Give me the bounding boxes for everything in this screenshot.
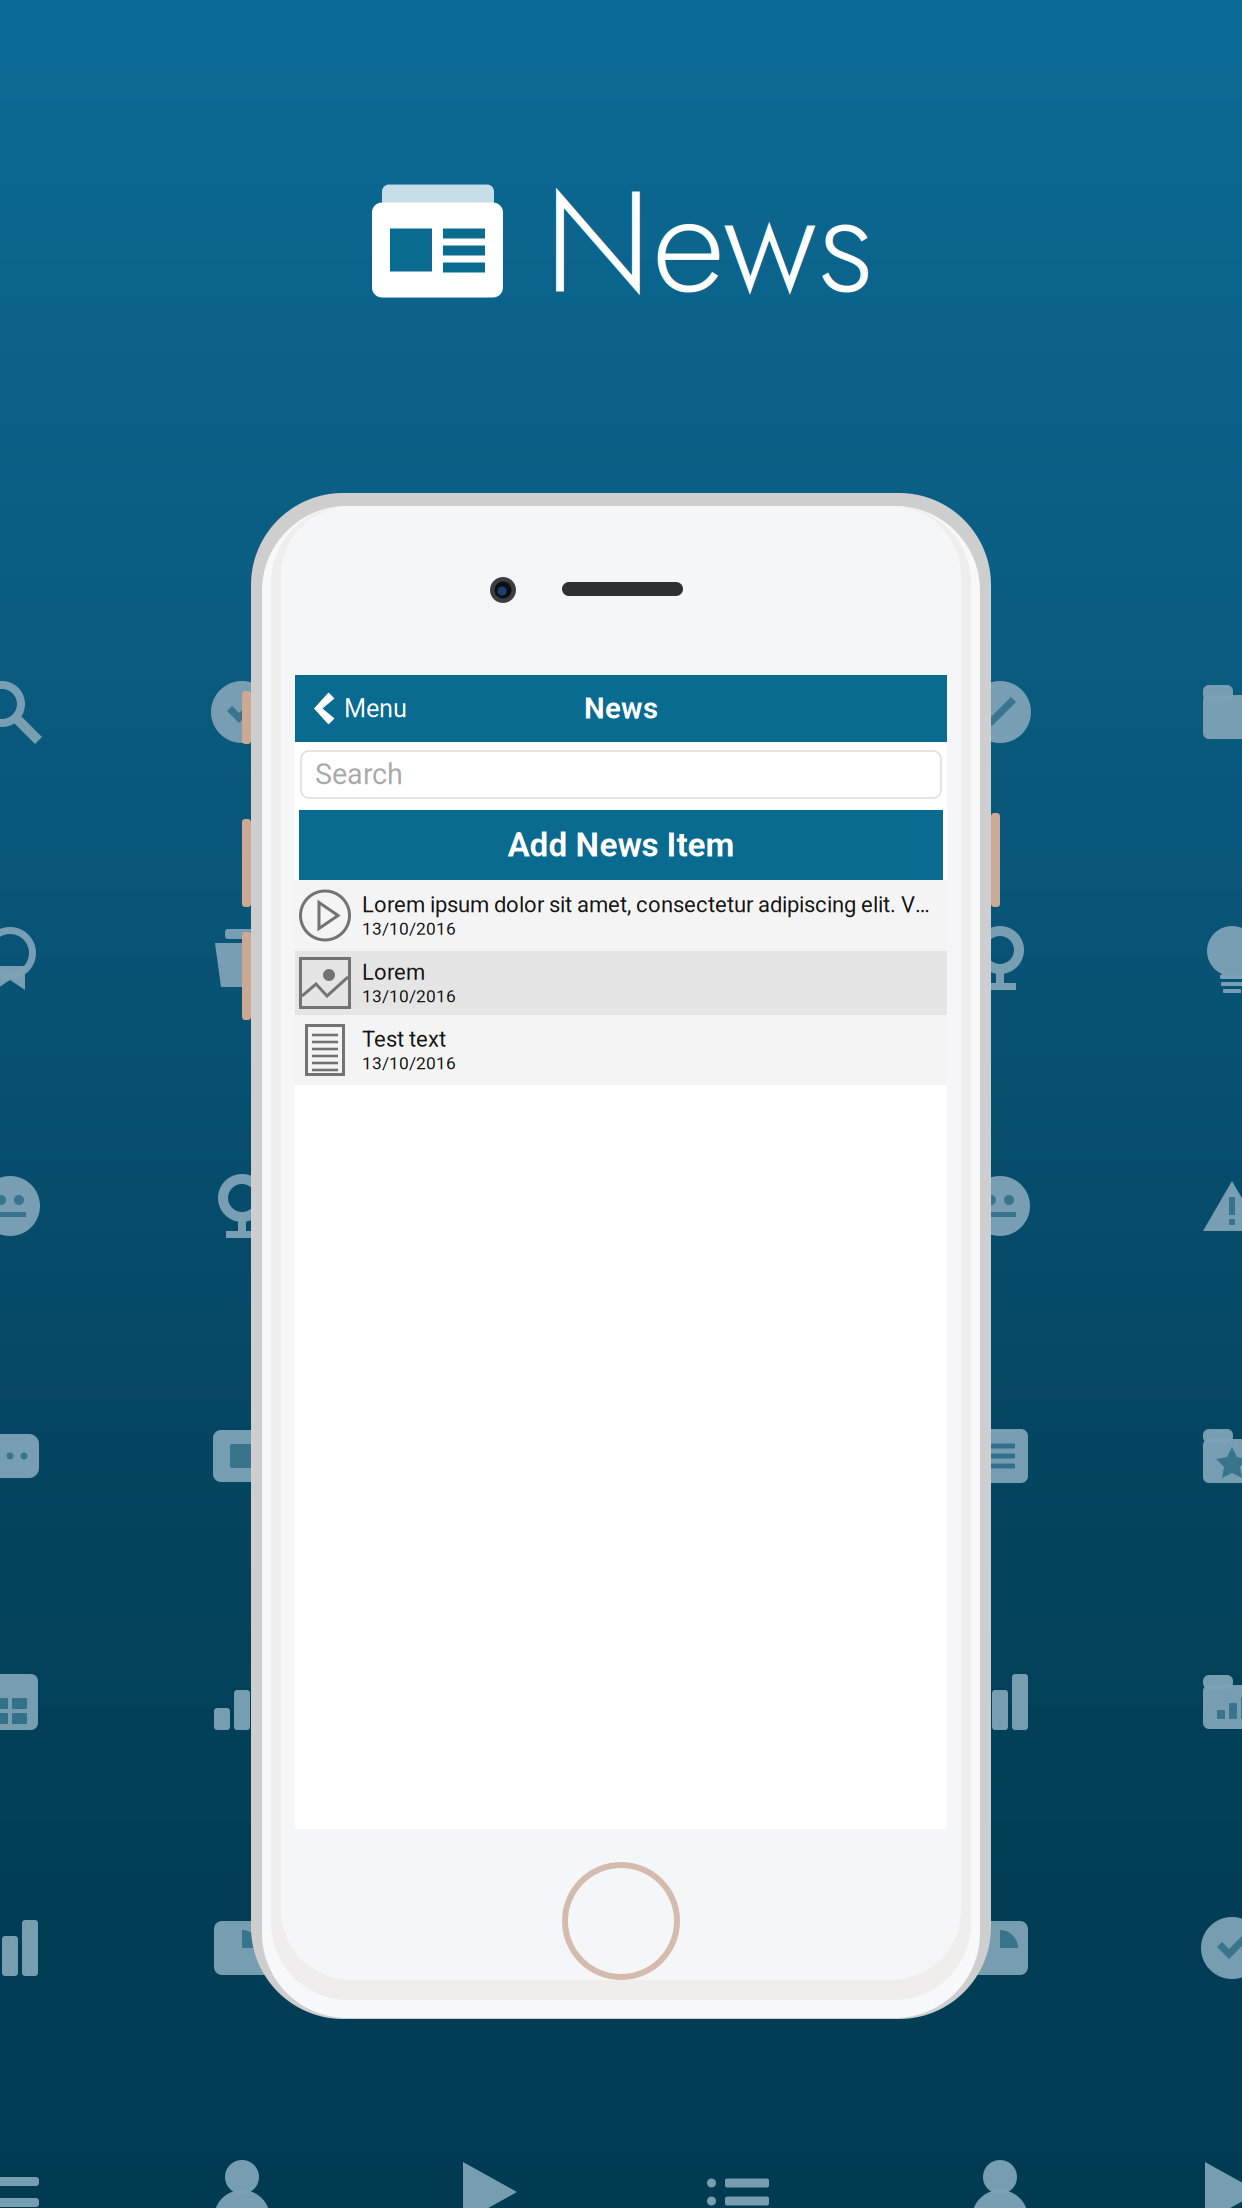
staticText: 13/10/2016 bbox=[362, 1053, 456, 1073]
button[interactable]: Search bbox=[301, 751, 941, 798]
staticText: 13/10/2016 bbox=[362, 986, 456, 1006]
button[interactable]: Lorem ipsum dolor sit amet, consectetur … bbox=[295, 880, 947, 951]
staticText: 13/10/2016 bbox=[362, 919, 456, 939]
staticText: Search bbox=[315, 758, 403, 791]
staticText: Lorem bbox=[362, 959, 425, 985]
button[interactable]: Test text bbox=[295, 1015, 947, 1085]
staticText: News bbox=[544, 139, 874, 345]
button[interactable]: Add News Item bbox=[299, 810, 943, 880]
button[interactable]: Menu bbox=[295, 675, 425, 742]
staticText: Menu bbox=[344, 694, 407, 723]
staticText: Lorem ipsum dolor sit amet, consectetur … bbox=[362, 892, 936, 918]
staticText: Test text bbox=[362, 1026, 446, 1052]
staticText: Add News Item bbox=[507, 825, 734, 865]
button[interactable]: Lorem bbox=[295, 951, 947, 1015]
staticText: News bbox=[584, 691, 658, 726]
